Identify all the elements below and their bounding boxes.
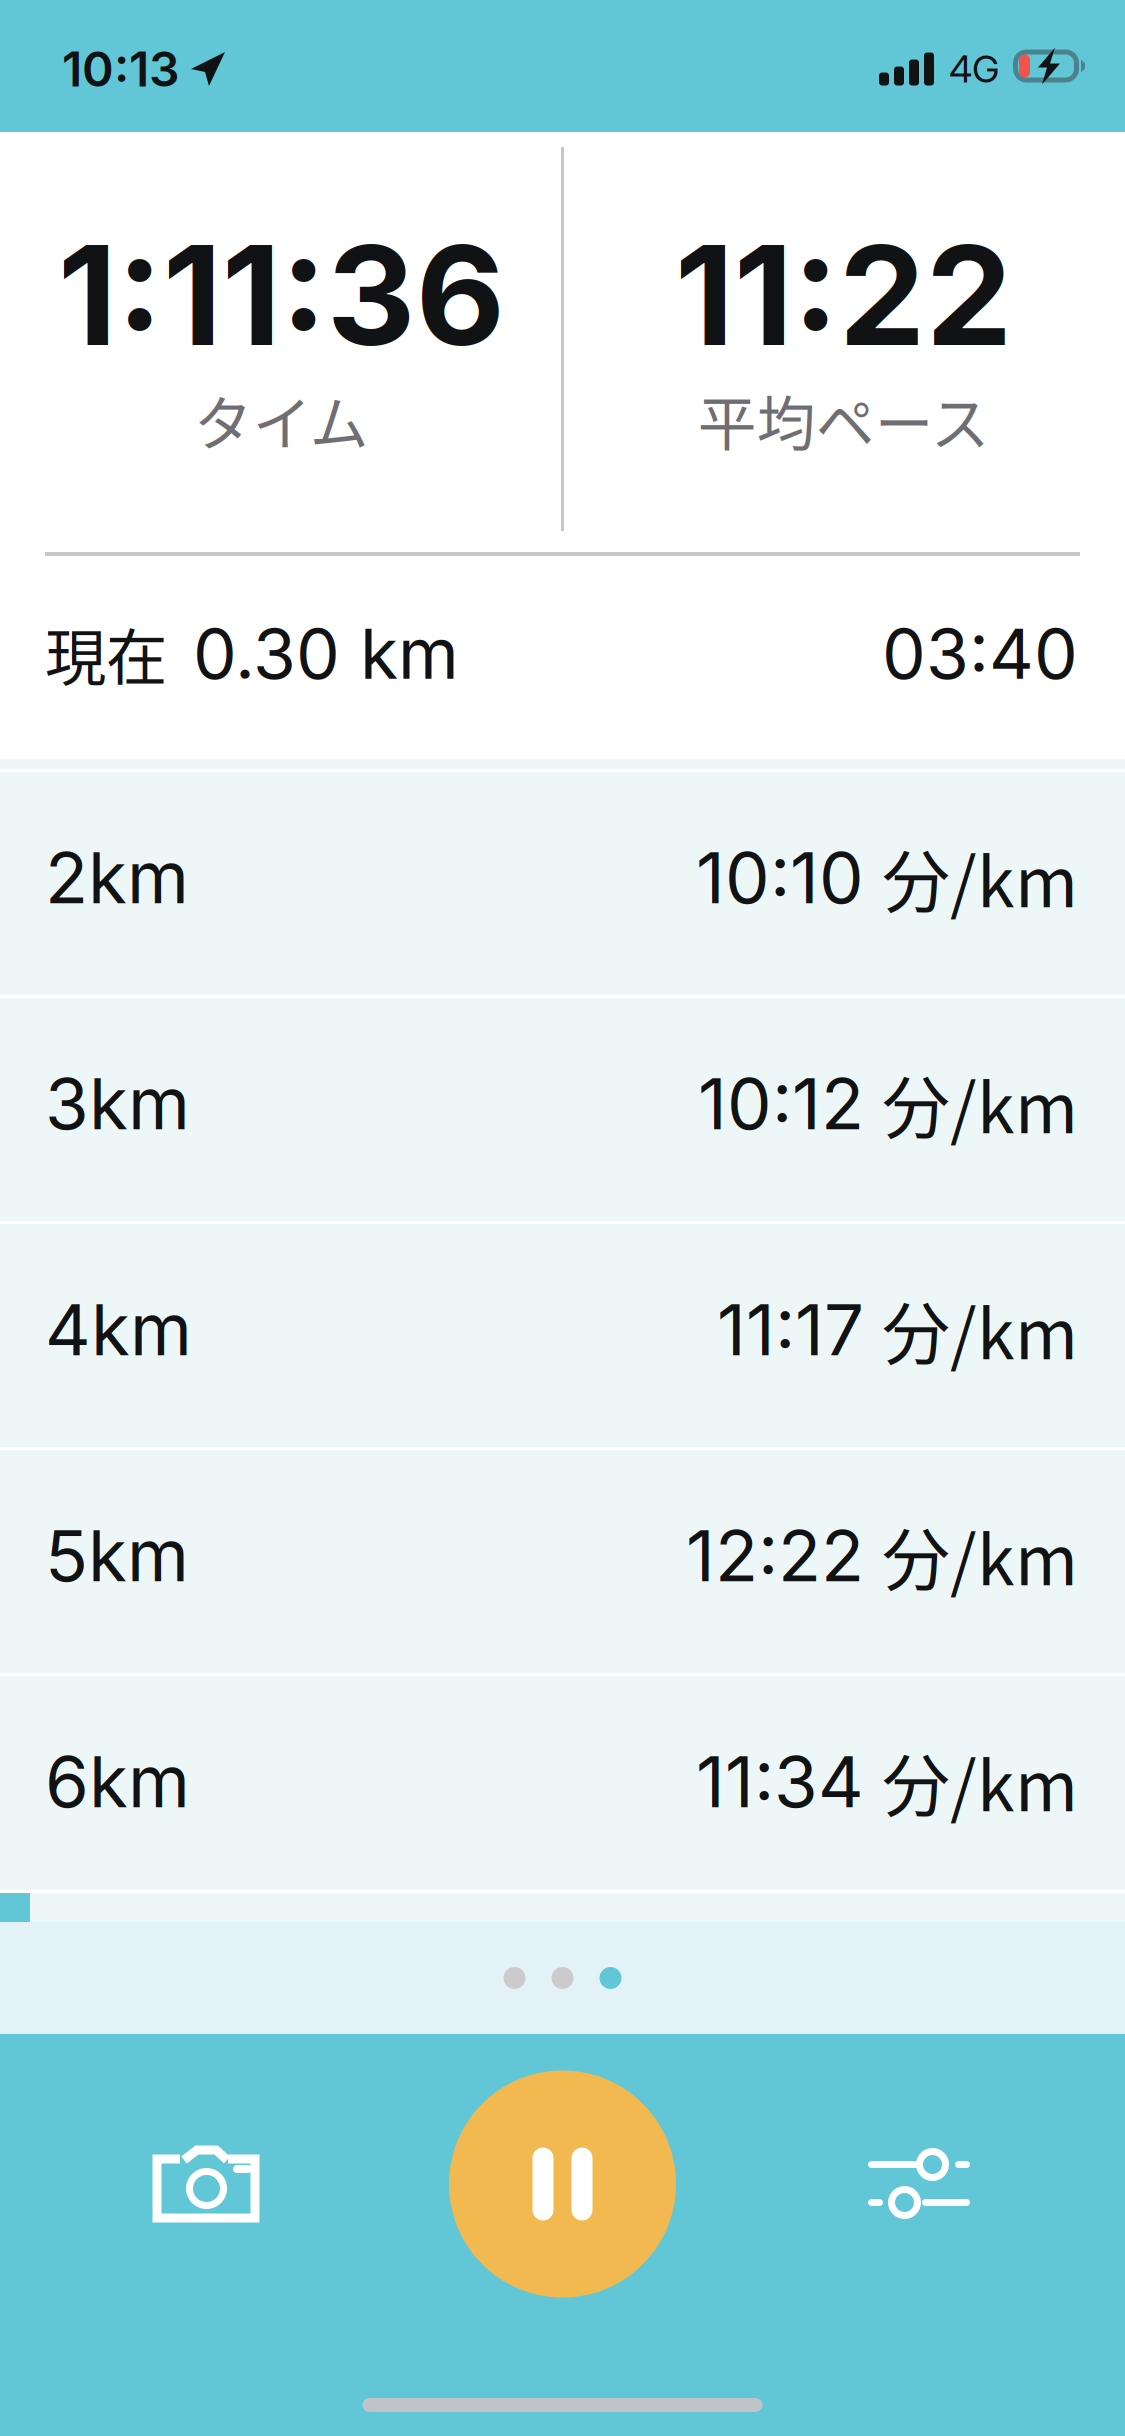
staticText: 6km bbox=[45, 1739, 190, 1824]
staticText: 分/km bbox=[882, 1732, 1078, 1831]
staticText: 11:17 bbox=[717, 1287, 864, 1372]
staticText: 4km bbox=[45, 1287, 192, 1372]
button[interactable]: 6km bbox=[0, 1673, 1125, 1899]
button[interactable]: 5km bbox=[0, 1447, 1125, 1673]
staticText: 4G bbox=[949, 46, 999, 92]
button[interactable]: Pause bbox=[449, 2070, 676, 2297]
staticText: 平均ペース bbox=[698, 377, 990, 462]
staticText: 1:11:36 bbox=[58, 212, 505, 378]
staticText: 分/km bbox=[882, 1506, 1078, 1605]
staticText: 2km bbox=[45, 835, 189, 920]
button[interactable]: Camera bbox=[130, 2109, 282, 2259]
staticText: タイム bbox=[194, 377, 369, 462]
staticText: 分/km bbox=[882, 1054, 1078, 1153]
staticText: 12:22 bbox=[686, 1513, 864, 1598]
button[interactable]: 3km bbox=[0, 995, 1125, 1221]
button[interactable]: Settings bbox=[843, 2109, 995, 2259]
staticText: 03:40 bbox=[882, 612, 1078, 695]
staticText: 分/km bbox=[882, 1280, 1078, 1379]
staticText: 10:12 bbox=[698, 1061, 864, 1146]
staticText: 現在 bbox=[45, 609, 167, 698]
staticText: 11:22 bbox=[675, 212, 1013, 378]
button[interactable]: 2km bbox=[0, 769, 1125, 995]
staticText: 5km bbox=[45, 1513, 189, 1598]
staticText: 10:13 bbox=[62, 40, 180, 98]
staticText: 分/km bbox=[882, 828, 1078, 927]
staticText: 3km bbox=[45, 1061, 190, 1146]
button[interactable]: 4km bbox=[0, 1221, 1125, 1447]
staticText: 11:34 bbox=[696, 1739, 864, 1824]
staticText: 0.30 km bbox=[193, 612, 459, 695]
staticText: 10:10 bbox=[696, 835, 864, 920]
